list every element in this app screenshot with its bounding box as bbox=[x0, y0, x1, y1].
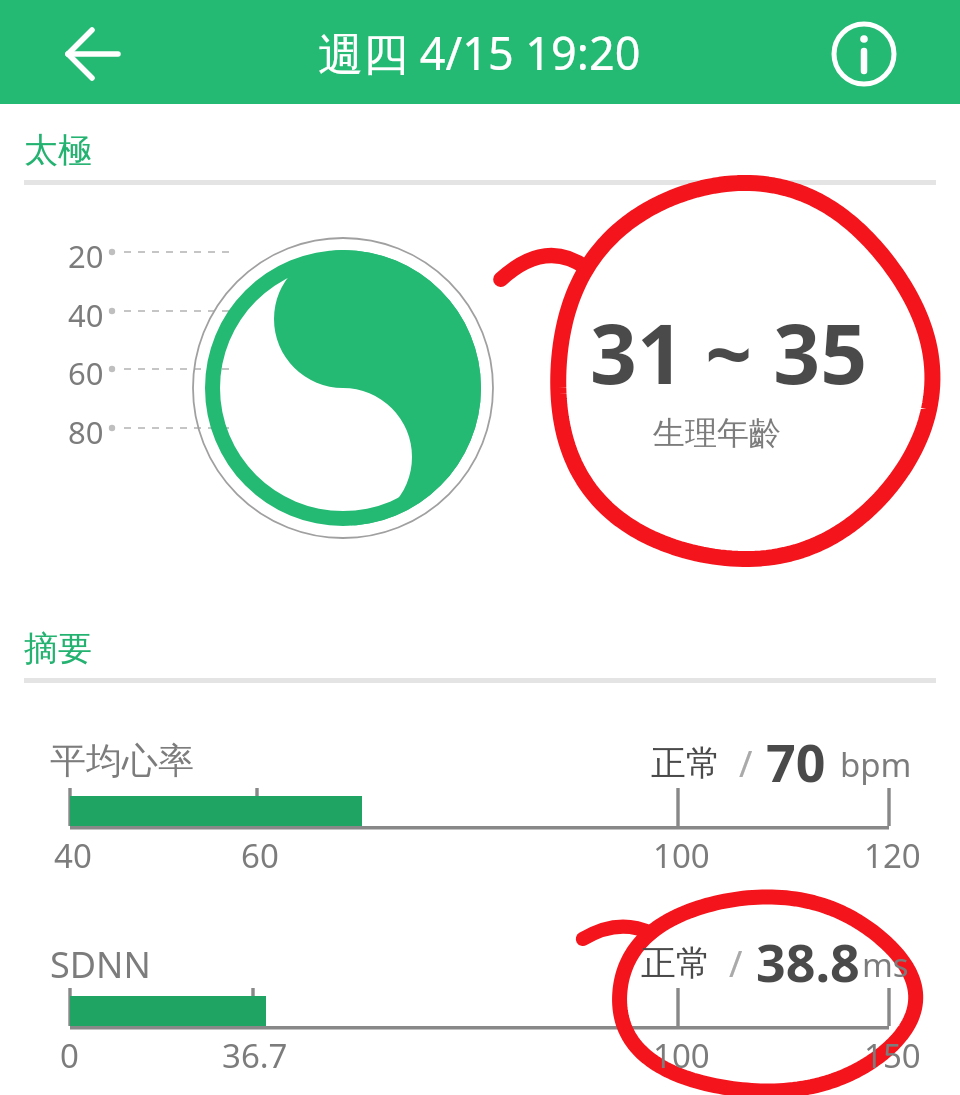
staticText: 40 bbox=[68, 294, 104, 336]
staticText: 36.7 bbox=[222, 1033, 288, 1078]
staticText: 60 bbox=[241, 833, 279, 878]
staticText: 太極 bbox=[24, 129, 92, 172]
staticText: 20 bbox=[68, 235, 104, 277]
staticText: 100 bbox=[653, 833, 710, 878]
staticText: 60 bbox=[68, 352, 104, 394]
staticText: 120 bbox=[864, 833, 921, 878]
staticText: 正常 bbox=[651, 741, 721, 785]
staticText: / bbox=[739, 739, 753, 788]
staticText: 38.8 bbox=[756, 926, 860, 997]
staticText: 生理年齡 bbox=[653, 413, 781, 453]
button[interactable]: Information bbox=[820, 14, 910, 94]
staticText: 40 bbox=[54, 833, 92, 878]
staticText: ms bbox=[862, 942, 909, 987]
staticText: 31 ~ 35 bbox=[590, 296, 868, 408]
staticText: bpm bbox=[840, 742, 912, 787]
staticText: / bbox=[729, 939, 743, 988]
staticText: 週四 4/15 19:20 bbox=[318, 22, 641, 83]
staticText: 平均心率 bbox=[50, 738, 194, 783]
staticText: 150 bbox=[864, 1033, 921, 1078]
staticText: 0 bbox=[60, 1033, 79, 1078]
staticText: 80 bbox=[68, 411, 104, 453]
staticText: 100 bbox=[653, 1033, 710, 1078]
staticText: SDNN bbox=[50, 940, 151, 989]
staticText: 正常 bbox=[641, 941, 711, 985]
button[interactable]: Back bbox=[40, 16, 150, 90]
staticText: 70 bbox=[766, 726, 826, 797]
staticText: 摘要 bbox=[24, 627, 92, 670]
